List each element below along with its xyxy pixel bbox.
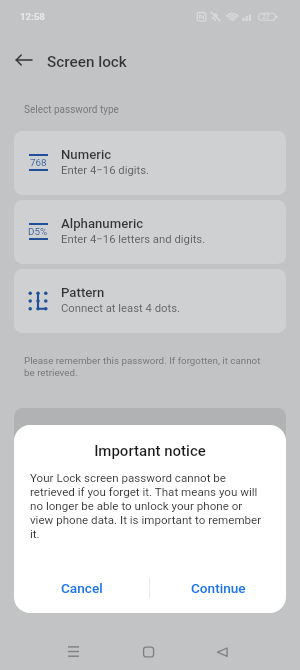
- staticText: Connect at least 4 dots.: [61, 302, 180, 315]
- button[interactable]: D5%: [14, 200, 286, 264]
- staticText: Please remember this password. If forgot…: [24, 355, 261, 379]
- staticText: Enter 4−16 letters and digits.: [61, 233, 206, 246]
- button[interactable]: Back: [202, 631, 243, 670]
- staticText: Continue: [191, 580, 246, 596]
- staticText: Important notice: [14, 442, 286, 460]
- button[interactable]: Pattern: [14, 269, 286, 333]
- staticText: 12:58: [20, 11, 45, 22]
- button[interactable]: Continue: [150, 566, 286, 610]
- button[interactable]: Cancel: [14, 566, 149, 610]
- button[interactable]: Home: [130, 631, 171, 670]
- staticText: Alphanumeric: [61, 216, 144, 231]
- staticText: D5%: [28, 226, 48, 237]
- staticText: Screen lock: [47, 53, 127, 71]
- staticText: Numeric: [61, 147, 112, 162]
- staticText: 27: [262, 13, 270, 21]
- staticText: Cancel: [61, 580, 103, 596]
- button[interactable]: [14, 408, 286, 472]
- staticText: 768: [30, 157, 47, 168]
- staticText: Enter 4−16 digits.: [61, 164, 149, 177]
- button[interactable]: Recent apps: [53, 631, 94, 670]
- button[interactable]: 768: [14, 131, 286, 195]
- staticText: Select password type: [24, 104, 119, 116]
- staticText: Your Lock screen password cannot be retr…: [30, 471, 274, 541]
- button[interactable]: Back: [14, 50, 34, 70]
- staticText: Pattern: [61, 285, 105, 300]
